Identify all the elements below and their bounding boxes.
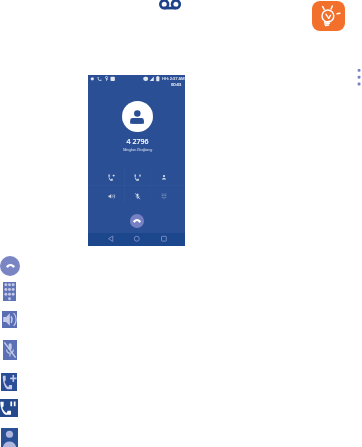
button[interactable]: Mute xyxy=(3,340,17,360)
button[interactable]: End call xyxy=(130,214,144,228)
button[interactable]: Speaker xyxy=(2,311,17,328)
button[interactable]: Voicemail xyxy=(158,0,182,10)
button[interactable]: Contact xyxy=(1,428,18,447)
button[interactable]: Tip xyxy=(312,1,345,31)
button[interactable]: Hold call xyxy=(0,399,18,417)
button[interactable]: Dialpad xyxy=(3,282,16,301)
staticText: 4 2796 xyxy=(89,137,186,147)
staticText: Ningbo Zhejiang xyxy=(89,147,186,152)
button[interactable]: More options xyxy=(355,67,362,87)
staticText: 00:03 xyxy=(171,82,182,88)
button[interactable]: Add call xyxy=(1,373,17,391)
staticText: HH: 2:37 AM xyxy=(162,76,185,81)
button[interactable]: End call xyxy=(0,256,20,276)
